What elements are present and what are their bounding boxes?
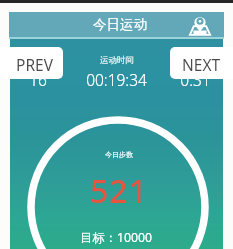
staticText: 今日运动 xyxy=(93,16,147,33)
staticText: 16 xyxy=(29,69,47,90)
staticText: 00:19:34 xyxy=(86,69,147,90)
button[interactable]: PREV xyxy=(0,47,63,79)
button[interactable]: Map xyxy=(189,14,211,36)
staticText: 521 xyxy=(90,169,148,213)
staticText: NEXT xyxy=(182,54,221,75)
staticText: 今日步数 xyxy=(105,150,133,159)
staticText: 运动步数 xyxy=(21,55,55,66)
staticText: 运动距离 xyxy=(179,55,213,66)
staticText: PREV xyxy=(16,54,53,75)
staticText: 0.31 xyxy=(180,69,211,90)
staticText: 运动时间 xyxy=(100,55,134,66)
button[interactable]: NEXT xyxy=(170,47,233,79)
staticText: 目标：10000 xyxy=(80,229,153,246)
